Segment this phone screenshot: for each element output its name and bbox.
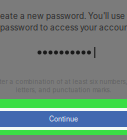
staticText: eate a new password. You'll use t bbox=[0, 11, 127, 21]
staticText: letters, and punctuation marks. bbox=[15, 86, 111, 94]
button[interactable]: Continue bbox=[0, 111, 127, 127]
staticText: password to access your account. bbox=[0, 22, 127, 32]
staticText: Continue bbox=[49, 115, 78, 123]
staticText: ter a combination of at least six number… bbox=[0, 78, 127, 86]
